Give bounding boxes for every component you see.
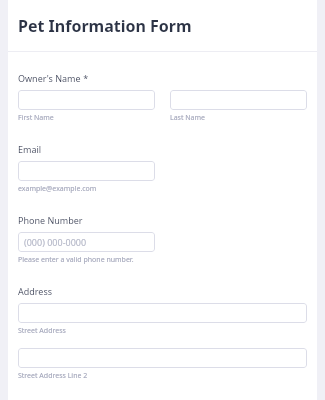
button[interactable] <box>170 90 307 110</box>
staticText: Email <box>18 143 42 155</box>
staticText: Phone Number <box>18 214 83 226</box>
staticText: * <box>81 72 89 84</box>
staticText: Owner's Name <box>18 72 81 84</box>
staticText: Street Address Line 2 <box>18 371 88 381</box>
staticText: Street Address <box>18 326 66 336</box>
button[interactable] <box>18 348 307 368</box>
staticText: Address <box>18 285 53 297</box>
staticText: Last Name <box>170 113 206 123</box>
button[interactable] <box>18 303 307 323</box>
staticText: First Name <box>18 113 54 123</box>
button[interactable]: (000) 000-0000 <box>18 232 155 252</box>
button[interactable] <box>18 161 155 181</box>
staticText: Please enter a valid phone number. <box>18 255 134 265</box>
staticText: example@example.com <box>18 184 97 194</box>
staticText: (000) 000-0000 <box>24 236 87 248</box>
button[interactable] <box>18 90 155 110</box>
staticText: Pet Information Form <box>18 15 192 37</box>
